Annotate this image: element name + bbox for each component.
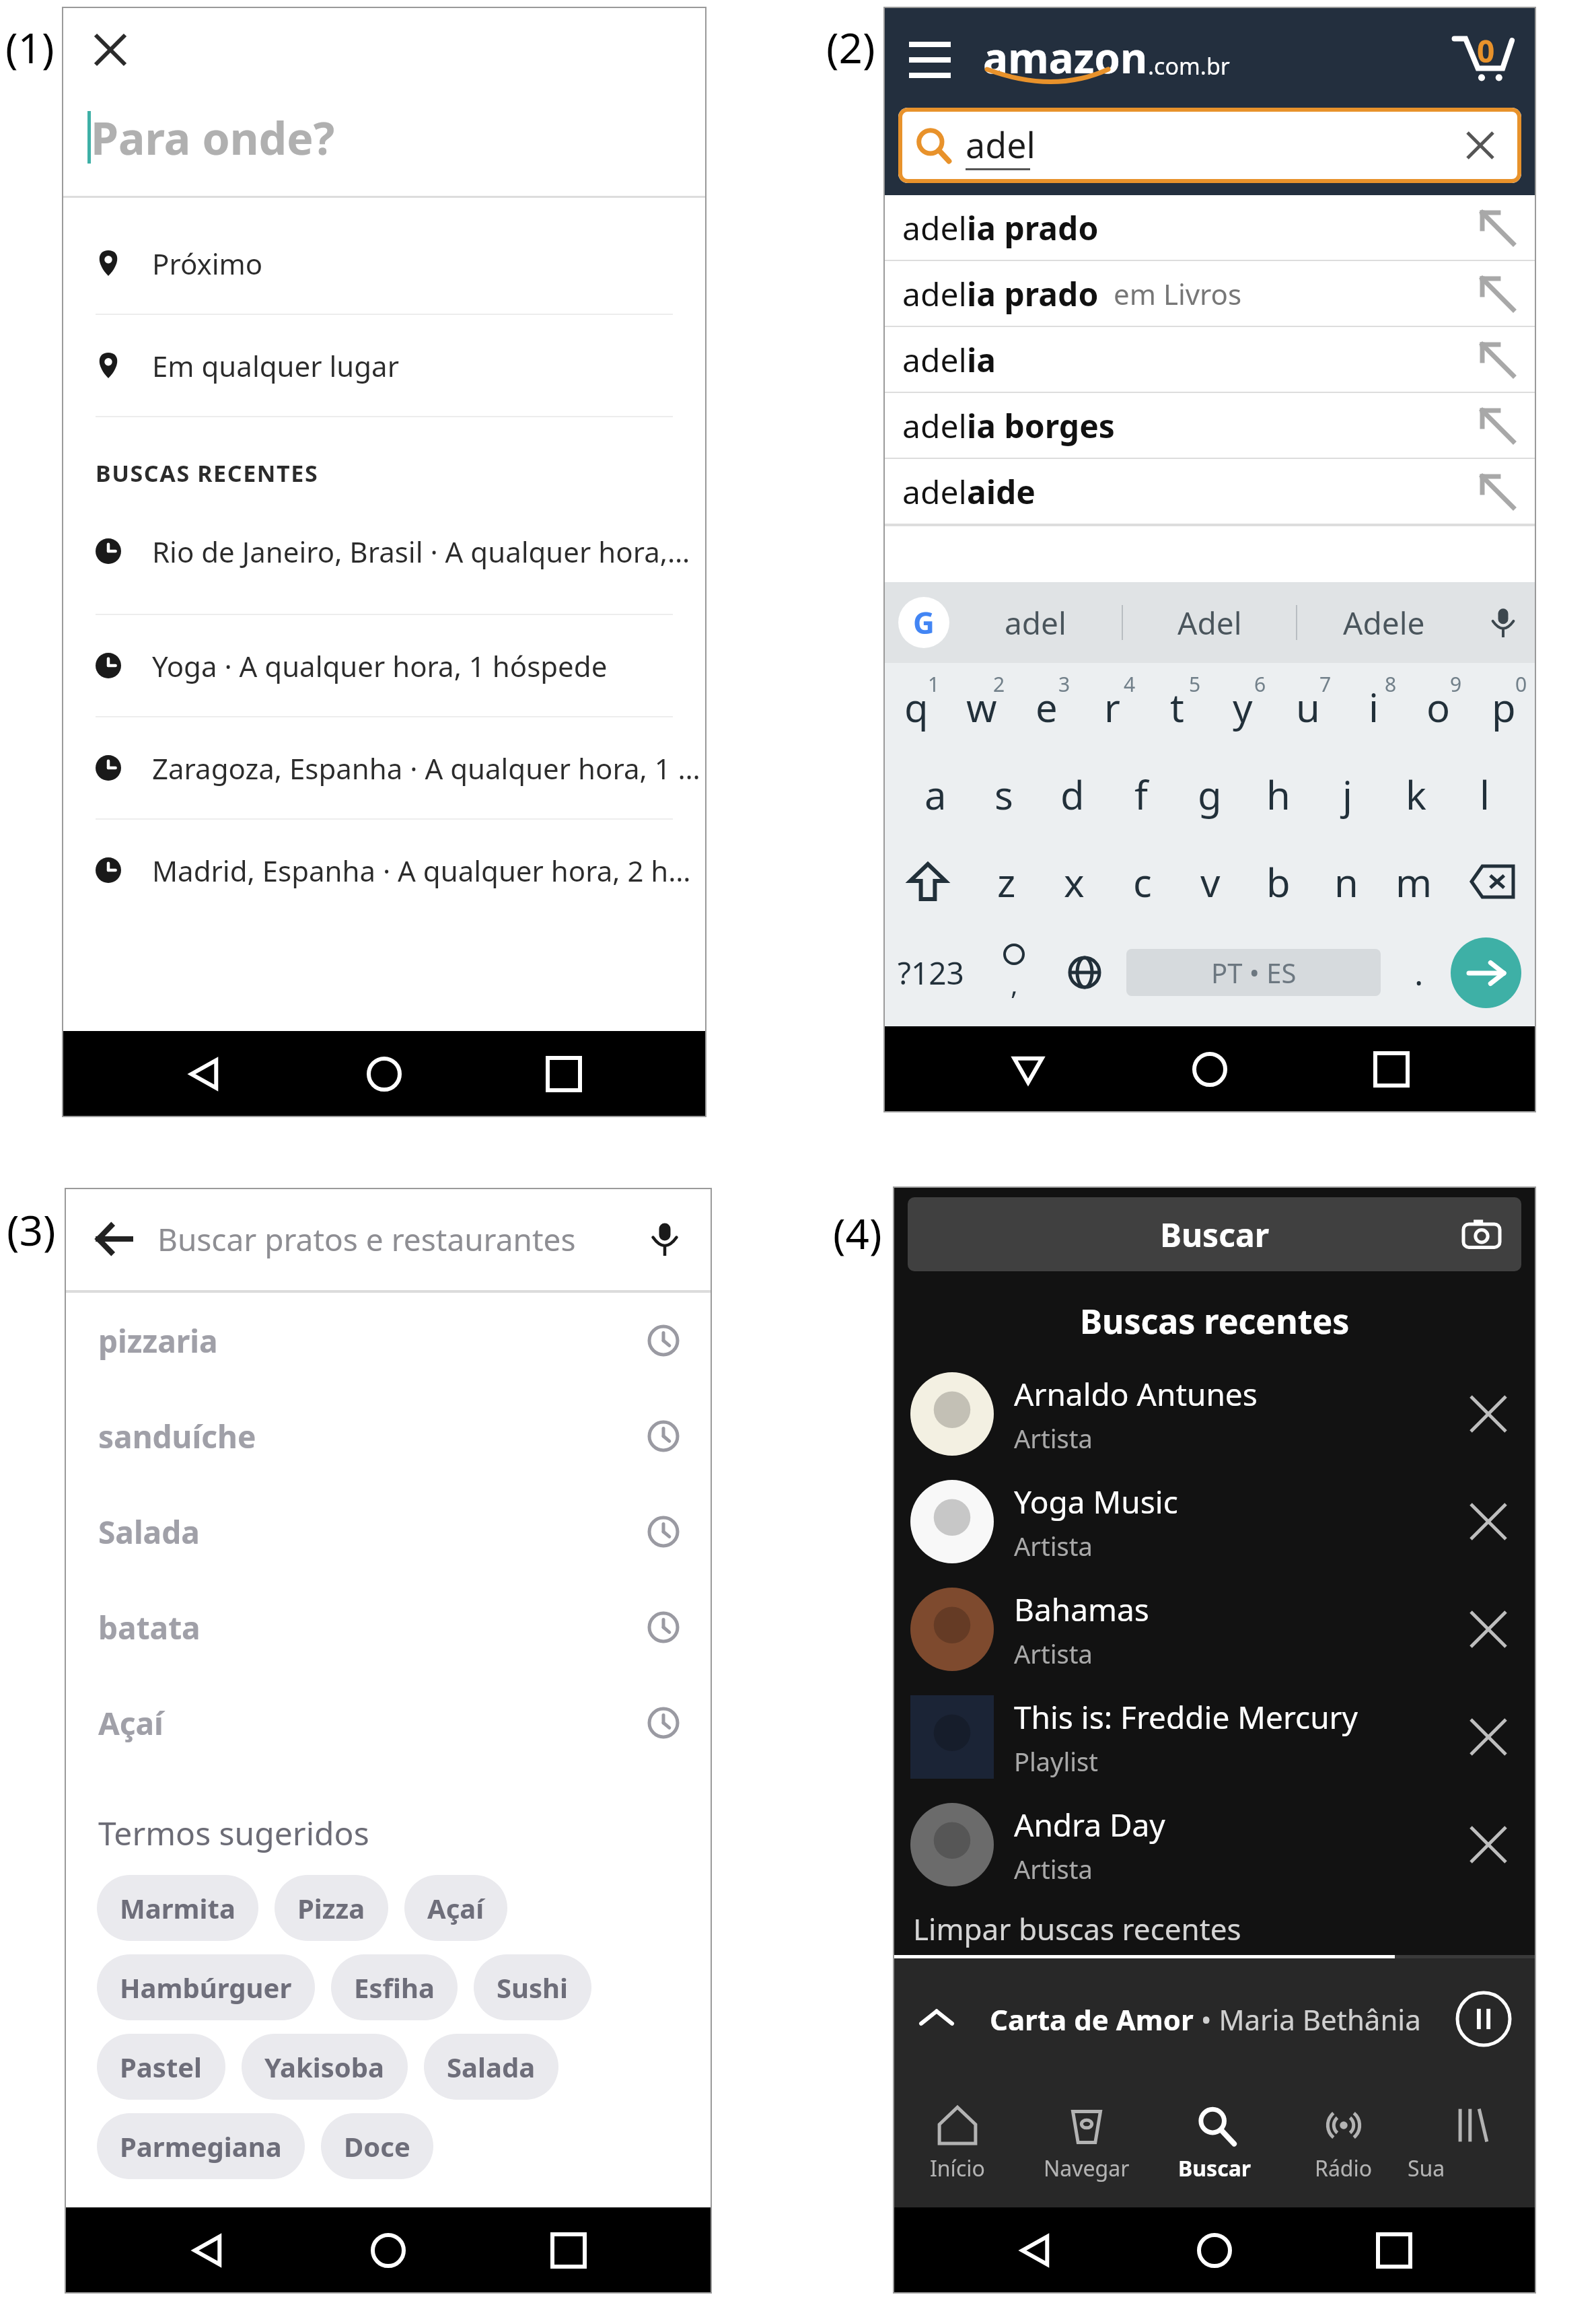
button[interactable]: Salada [424,2034,558,2100]
button[interactable]: Recentes [532,2213,606,2287]
button[interactable]: Doce [321,2113,433,2179]
button[interactable]: adelia prado [883,261,1536,326]
button[interactable]: Remover [1459,1493,1517,1551]
button[interactable]: Para onde? [62,78,706,196]
button[interactable]: Google [898,597,949,648]
button[interactable]: Rio de Janeiro, Brasil · A qualquer hora… [62,489,706,614]
button[interactable]: adelia [883,327,1536,392]
button[interactable]: i [1340,663,1406,750]
button[interactable]: p [1471,663,1536,750]
button[interactable]: Madrid, Espanha · A qualquer hora, 2 h… [62,820,706,921]
button[interactable]: PT • ES [1126,949,1381,996]
button[interactable]: Hambúrguer [97,1954,315,2020]
button[interactable]: Início [347,1037,421,1111]
button[interactable]: sanduíche [65,1388,712,1484]
button[interactable]: Voltar [171,2213,245,2287]
button[interactable]: Parmegiana [97,2113,305,2179]
button[interactable]: Rádio [1279,2080,1408,2207]
button[interactable]: Início [351,2213,425,2287]
button[interactable]: ?123 [883,925,978,1020]
button[interactable]: Remover [1459,1385,1517,1443]
button[interactable]: Bahamas [893,1575,1536,1683]
button[interactable]: Remover [1459,1600,1517,1658]
button[interactable]: Pausar [1451,1987,1516,2051]
button[interactable]: j [1313,750,1381,838]
button[interactable]: adel [898,108,1521,183]
button[interactable]: Adel [1123,582,1296,663]
button[interactable]: Yakisoba [242,2034,408,2100]
button[interactable]: Adele [1297,582,1470,663]
button[interactable]: Carrinho [1445,20,1519,94]
button[interactable]: Apagar [1448,838,1536,925]
button[interactable]: Pastel [97,2034,225,2100]
button[interactable]: a [901,750,970,838]
button[interactable]: Arnaldo Antunes [893,1360,1536,1468]
button[interactable]: Navegar [1022,2080,1151,2207]
button[interactable]: Yoga Music [893,1468,1536,1575]
button[interactable]: Buscar [1151,2080,1279,2207]
button[interactable]: c [1108,838,1176,925]
button[interactable]: Limpar [1454,119,1507,172]
button[interactable]: Início [1177,2213,1252,2287]
button[interactable]: Fechar [82,22,139,78]
button[interactable]: Limpar buscas recentes [893,1903,1536,1955]
button[interactable]: Expandir [893,1958,1536,2080]
button[interactable]: n [1312,838,1380,925]
button[interactable]: Em qualquer lugar [62,315,706,416]
button[interactable]: k [1381,750,1450,838]
button[interactable]: Enviar [1451,937,1521,1008]
button[interactable]: Remover [1459,1708,1517,1766]
button[interactable]: Buscar [908,1197,1521,1271]
button[interactable]: o [1406,663,1471,750]
button[interactable]: v [1176,838,1244,925]
button[interactable]: Voz [1480,599,1527,646]
button[interactable]: Esfiha [331,1954,458,2020]
button[interactable]: g [1175,750,1244,838]
button[interactable]: r [1079,663,1145,750]
button[interactable]: d [1038,750,1107,838]
button[interactable]: w [949,663,1014,750]
button[interactable]: Sua Biblioteca [1408,2080,1536,2207]
button[interactable]: Voltar [82,1208,144,1270]
button[interactable]: Emoji [978,925,1049,1020]
button[interactable]: Salada [65,1484,712,1580]
button[interactable]: Andra Day [893,1791,1536,1898]
button[interactable]: adelaide [883,459,1536,524]
button[interactable]: Recentes [1357,2213,1431,2287]
button[interactable]: pizzaria [65,1293,712,1388]
button[interactable]: batata [65,1580,712,1675]
button[interactable]: e [1014,663,1079,750]
button[interactable]: t [1145,663,1210,750]
button[interactable]: z [972,838,1040,925]
button[interactable]: Câmera [1459,1212,1504,1256]
button[interactable]: Voltar [168,1037,242,1111]
button[interactable]: Sushi [474,1954,591,2020]
button[interactable]: Shift [883,838,972,925]
button[interactable]: adelia borges [883,393,1536,458]
button[interactable]: q [883,663,949,750]
button[interactable]: Yoga · A qualquer hora, 1 hóspede [62,615,706,716]
button[interactable]: Açaí [65,1675,712,1771]
button[interactable]: Voltar [991,1032,1065,1106]
button[interactable]: l [1450,750,1519,838]
button[interactable]: Açaí [404,1875,507,1941]
button[interactable]: Menu [900,27,960,87]
button[interactable]: Pizza [275,1875,388,1941]
button[interactable]: y [1210,663,1275,750]
button[interactable]: adel [949,582,1122,663]
button[interactable]: Busca por voz [641,1215,689,1263]
button[interactable]: This is: Freddie Mercury [893,1683,1536,1791]
button[interactable]: b [1244,838,1312,925]
button[interactable]: Expandir [913,1995,960,2043]
button[interactable]: Idioma [1049,925,1120,1020]
button[interactable]: u [1275,663,1340,750]
button[interactable]: Início [1173,1032,1247,1106]
button[interactable]: Recentes [1354,1032,1428,1106]
button[interactable]: x [1040,838,1108,925]
button[interactable]: m [1380,838,1448,925]
button[interactable]: Remover [1459,1816,1517,1874]
button[interactable]: s [970,750,1038,838]
button[interactable]: Próximo [62,213,706,314]
button[interactable]: Recentes [527,1037,601,1111]
button[interactable]: Marmita [97,1875,258,1941]
